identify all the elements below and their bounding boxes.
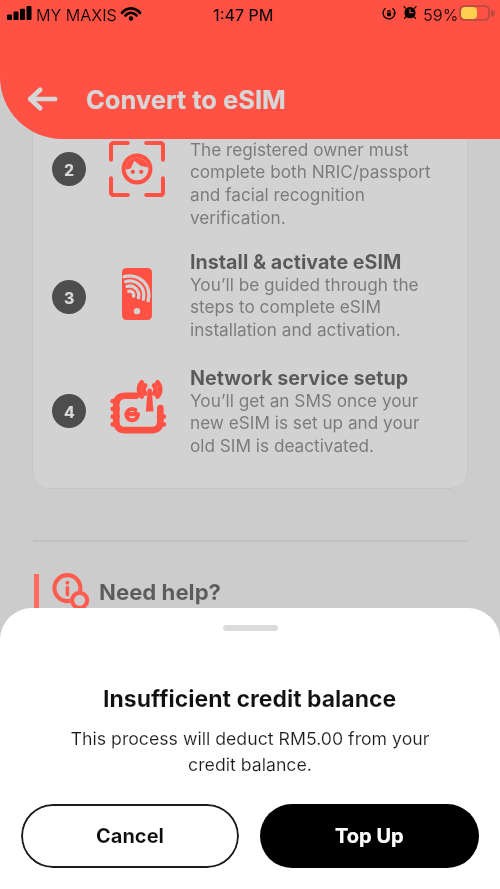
button[interactable]: Top Up [260, 804, 479, 868]
staticText: Cancel [96, 824, 164, 848]
staticText: Network service setup [190, 366, 409, 390]
staticText: 2 [64, 160, 75, 179]
button[interactable]: Cancel [21, 804, 239, 868]
staticText: 4 [64, 402, 75, 421]
staticText: 3 [64, 288, 75, 307]
staticText: This process will deduct RM5.00 from you… [54, 728, 446, 775]
staticText: The registered owner must complete both … [190, 139, 440, 229]
staticText: You’ll get an SMS once your new eSIM is … [190, 390, 440, 457]
staticText: 1:47 PM [213, 5, 274, 24]
staticText: Convert to eSIM [86, 84, 286, 115]
staticText: Insufficient credit balance [103, 685, 397, 713]
staticText: Need help? [99, 578, 222, 605]
staticText: MY MAXIS [36, 5, 117, 24]
staticText: Top Up [335, 824, 404, 848]
staticText: You’ll be guided through the steps to co… [190, 274, 440, 341]
button[interactable]: Back [22, 79, 62, 119]
staticText: Install & activate eSIM [190, 250, 402, 274]
staticText: 59% [423, 5, 459, 24]
